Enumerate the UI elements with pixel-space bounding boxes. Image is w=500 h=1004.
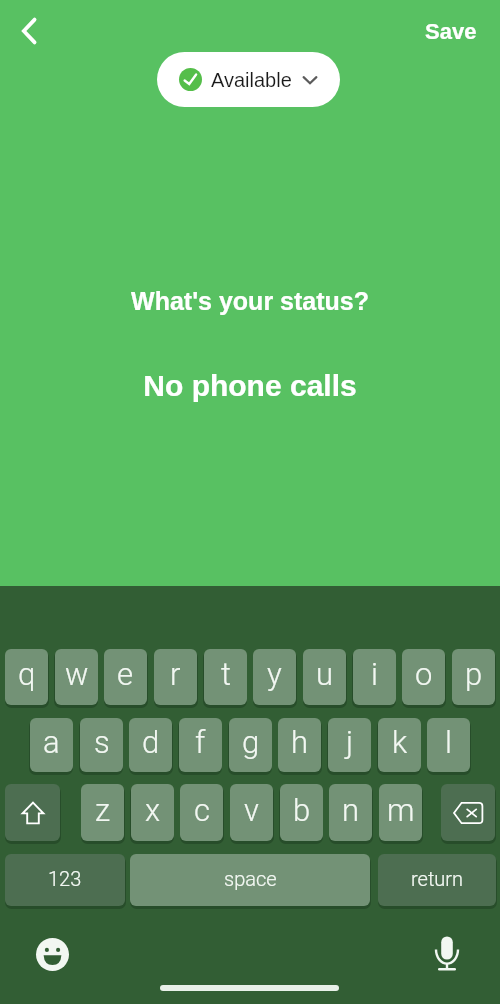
button[interactable]: Back [6, 9, 50, 53]
staticText: a [43, 724, 60, 760]
button[interactable]: a [30, 718, 73, 772]
button[interactable]: z [81, 784, 124, 841]
staticText: y [267, 656, 282, 692]
button[interactable]: o [402, 649, 445, 705]
button[interactable]: f [179, 718, 222, 772]
button[interactable]: p [452, 649, 495, 705]
staticText: c [194, 792, 210, 828]
button[interactable]: v [230, 784, 273, 841]
staticText: n [342, 792, 360, 828]
staticText: s [94, 724, 110, 760]
staticText: p [465, 656, 483, 692]
staticText: return [411, 867, 464, 890]
staticText: z [95, 792, 111, 828]
button[interactable]: w [55, 649, 98, 705]
button[interactable]: j [328, 718, 371, 772]
staticText: k [392, 724, 408, 760]
button[interactable]: u [303, 649, 346, 705]
button[interactable]: g [229, 718, 272, 772]
button[interactable]: t [204, 649, 247, 705]
button[interactable]: Voice input [429, 934, 465, 970]
button[interactable]: l [427, 718, 470, 772]
staticText: d [142, 724, 160, 760]
button[interactable]: y [253, 649, 296, 705]
staticText: i [371, 656, 378, 692]
button[interactable]: return [378, 854, 496, 906]
staticText: u [316, 656, 334, 692]
staticText: o [415, 656, 433, 692]
button[interactable]: Available [157, 52, 340, 107]
button[interactable]: 123 [5, 854, 125, 906]
staticText: Save [425, 19, 477, 44]
button[interactable]: q [5, 649, 48, 705]
button[interactable]: d [129, 718, 172, 772]
staticText: No phone calls [143, 369, 357, 403]
staticText: b [293, 792, 311, 828]
staticText: m [387, 792, 415, 828]
button[interactable]: i [353, 649, 396, 705]
button[interactable]: c [180, 784, 223, 841]
staticText: g [242, 724, 260, 760]
button[interactable]: Emoji [36, 938, 69, 971]
staticText: What's your status? [131, 287, 369, 315]
button[interactable]: h [278, 718, 321, 772]
button[interactable]: s [80, 718, 123, 772]
staticText: l [445, 724, 452, 760]
button[interactable]: k [378, 718, 421, 772]
staticText: q [18, 656, 36, 692]
button[interactable]: b [280, 784, 323, 841]
staticText: f [195, 724, 206, 760]
staticText: w [65, 656, 89, 692]
button[interactable]: Save [419, 15, 483, 48]
staticText: r [170, 656, 181, 692]
button[interactable]: x [131, 784, 174, 841]
button[interactable]: n [329, 784, 372, 841]
staticText: h [291, 724, 309, 760]
button[interactable] [441, 784, 495, 841]
button[interactable]: space [130, 854, 370, 906]
staticText: Available [211, 69, 292, 91]
staticText: t [221, 656, 231, 692]
staticText: space [224, 867, 277, 890]
staticText: v [244, 792, 259, 828]
staticText: e [117, 656, 134, 692]
staticText: 123 [48, 867, 82, 890]
staticText: x [145, 792, 161, 828]
button[interactable] [5, 784, 60, 841]
staticText: j [346, 724, 354, 760]
button[interactable]: m [379, 784, 422, 841]
button[interactable]: r [154, 649, 197, 705]
button[interactable]: e [104, 649, 147, 705]
